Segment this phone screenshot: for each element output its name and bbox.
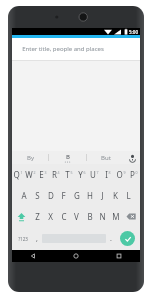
button[interactable]: ?123 <box>14 227 32 250</box>
button[interactable]: M <box>109 206 122 227</box>
staticText: O <box>116 169 123 180</box>
staticText: M <box>112 211 120 222</box>
button[interactable]: A <box>17 185 31 206</box>
button[interactable]: Back <box>12 250 54 262</box>
button[interactable]: By <box>12 151 48 164</box>
button[interactable]: R <box>49 164 62 185</box>
staticText: L <box>126 190 131 201</box>
staticText: U <box>90 169 96 180</box>
staticText: Y <box>78 169 83 180</box>
staticText: 7 <box>96 170 99 175</box>
button[interactable]: E <box>36 164 49 185</box>
staticText: G <box>74 190 80 201</box>
button[interactable]: Done <box>120 231 135 246</box>
button[interactable]: N <box>96 206 109 227</box>
button[interactable]: Y <box>75 164 88 185</box>
staticText: B <box>66 153 70 161</box>
staticText: 0 <box>135 170 138 175</box>
staticText: B <box>87 211 93 222</box>
button[interactable]: Backspace <box>122 206 140 227</box>
button[interactable]: V <box>70 206 83 227</box>
button[interactable]: Shift <box>12 206 31 227</box>
button[interactable]: Z <box>31 206 44 227</box>
button[interactable]: I <box>101 164 114 185</box>
staticText: D <box>48 190 54 201</box>
button[interactable]: B <box>83 206 96 227</box>
staticText: A <box>21 190 27 201</box>
button[interactable]: Recent apps <box>97 250 140 262</box>
button[interactable]: W <box>24 164 36 185</box>
staticText: Q <box>13 169 20 180</box>
button[interactable]: Q <box>12 164 24 185</box>
staticText: P <box>130 169 135 180</box>
button[interactable]: . <box>106 227 116 250</box>
staticText: ?123 <box>18 236 28 242</box>
button[interactable]: K <box>109 185 122 206</box>
staticText: But <box>101 154 111 162</box>
staticText: 6 <box>83 170 86 175</box>
button[interactable]: U <box>88 164 101 185</box>
staticText: 1 <box>20 170 23 175</box>
staticText: 4 <box>57 170 60 175</box>
button[interactable]: H <box>83 185 96 206</box>
button[interactable]: D <box>44 185 57 206</box>
staticText: V <box>74 211 79 222</box>
button[interactable]: Voice input <box>124 151 140 164</box>
button[interactable]: S <box>31 185 44 206</box>
staticText: F <box>61 190 66 201</box>
staticText: X <box>48 211 53 222</box>
button[interactable]: P <box>127 164 140 185</box>
staticText: 9 <box>123 170 126 175</box>
button[interactable]: L <box>122 185 135 206</box>
button[interactable]: J <box>96 185 109 206</box>
staticText: W <box>25 169 33 180</box>
button[interactable]: , <box>32 227 42 250</box>
button[interactable]: X <box>44 206 57 227</box>
button[interactable]: B <box>49 151 86 164</box>
button[interactable]: F <box>57 185 70 206</box>
button[interactable]: Enter title, people and places <box>12 38 140 61</box>
button[interactable]: Home <box>54 250 97 262</box>
button[interactable]: G <box>70 185 83 206</box>
staticText: Enter title, people and places <box>22 45 104 53</box>
staticText: , <box>36 234 38 244</box>
staticText: C <box>61 211 67 222</box>
staticText: N <box>99 211 106 222</box>
staticText: I <box>105 169 108 180</box>
staticText: 5:00 <box>129 29 138 35</box>
staticText: H <box>87 190 93 201</box>
button[interactable]: C <box>57 206 70 227</box>
staticText: T <box>65 169 70 180</box>
staticText: 8 <box>108 170 111 175</box>
staticText: 3 <box>44 170 47 175</box>
staticText: By <box>27 154 34 162</box>
staticText: J <box>101 190 104 201</box>
staticText: S <box>35 190 40 201</box>
button[interactable]: But <box>87 151 124 164</box>
staticText: K <box>113 190 118 201</box>
staticText: E <box>39 169 44 180</box>
button[interactable]: T <box>62 164 75 185</box>
button[interactable]: O <box>114 164 127 185</box>
staticText: 5 <box>70 170 73 175</box>
staticText: Z <box>35 211 40 222</box>
staticText: R <box>52 169 57 180</box>
staticText: 2 <box>33 170 36 175</box>
staticText: . <box>110 234 112 244</box>
